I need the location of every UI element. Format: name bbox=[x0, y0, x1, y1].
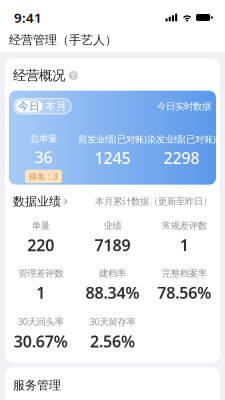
staticText: 建档率 bbox=[99, 267, 126, 279]
staticText: 88.34% bbox=[85, 282, 139, 303]
staticText: ? bbox=[71, 70, 75, 81]
staticText: 业绩 bbox=[103, 220, 121, 231]
staticText: 今日 bbox=[18, 100, 40, 113]
staticText: 总单量 bbox=[30, 133, 57, 144]
staticText: 经营概况 bbox=[13, 67, 65, 84]
staticText: 数据业绩 bbox=[13, 194, 61, 209]
staticText: 30.67% bbox=[14, 331, 68, 352]
staticText: 本月累计数据（更新至昨日） bbox=[95, 196, 212, 207]
staticText: 剪发业绩(已对账) bbox=[78, 133, 147, 145]
staticText: 30天留存率 bbox=[89, 315, 135, 328]
staticText: 服务管理 bbox=[13, 378, 61, 393]
staticText: 今日实时数据 bbox=[157, 101, 211, 112]
staticText: 完整档案率 bbox=[162, 267, 207, 279]
staticText: 1 bbox=[180, 234, 189, 255]
staticText: 220 bbox=[27, 234, 54, 255]
staticText: 30天回头率 bbox=[18, 315, 64, 328]
button[interactable]: 今日实时数据 bbox=[157, 101, 211, 112]
staticText: 染发业绩(已对账) bbox=[147, 133, 216, 145]
staticText: 2298 bbox=[163, 147, 199, 168]
staticText: 经营管理（手艺人） bbox=[9, 33, 117, 47]
staticText: 78.56% bbox=[157, 282, 211, 303]
staticText: 常规差评数 bbox=[162, 220, 207, 231]
staticText: 本月 bbox=[45, 100, 67, 113]
button[interactable]: 今日 bbox=[14, 99, 71, 114]
staticText: 2.56% bbox=[90, 331, 135, 352]
staticText: 7189 bbox=[94, 234, 130, 255]
staticText: 管理差评数 bbox=[18, 267, 63, 279]
staticText: 单量 bbox=[32, 220, 50, 231]
staticText: 1245 bbox=[94, 147, 130, 168]
button[interactable]: 数据业绩 bbox=[13, 194, 68, 209]
staticText: 9:41 bbox=[14, 9, 42, 26]
staticText: 36 bbox=[34, 146, 52, 168]
staticText: 1 bbox=[36, 282, 45, 303]
staticText: 排名：3 bbox=[29, 171, 58, 182]
